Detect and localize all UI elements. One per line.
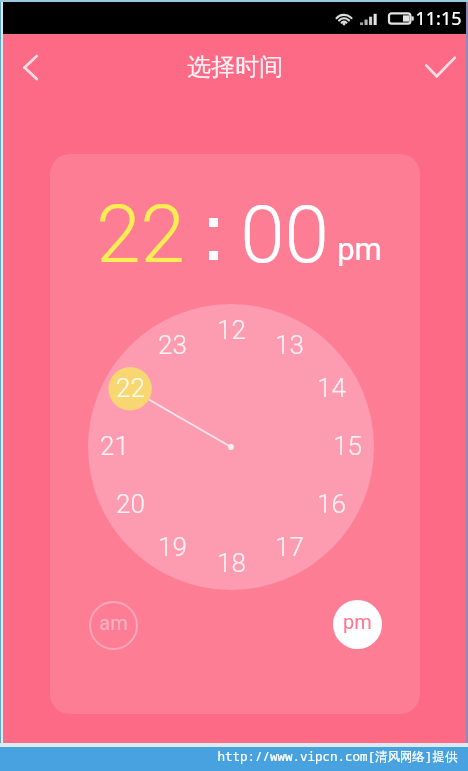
button[interactable]: Back bbox=[3, 40, 57, 94]
staticText: 11:15 bbox=[415, 6, 462, 31]
staticText: pm bbox=[337, 231, 382, 267]
staticText: 18 bbox=[217, 548, 246, 578]
staticText: 23 bbox=[158, 330, 187, 360]
staticText: 13 bbox=[275, 330, 304, 360]
button[interactable]: Confirm bbox=[408, 38, 466, 96]
button[interactable]: am bbox=[89, 601, 138, 650]
staticText: pm bbox=[343, 610, 372, 633]
staticText: http://www.vipcn.com[清风网络]提供 bbox=[217, 748, 458, 765]
staticText: 选择时间 bbox=[187, 52, 283, 82]
staticText: 22 bbox=[116, 373, 145, 403]
button[interactable]: pm bbox=[333, 600, 382, 649]
staticText: 14 bbox=[317, 373, 346, 403]
staticText: 00 bbox=[240, 188, 329, 282]
staticText: 22 bbox=[96, 188, 185, 282]
staticText: 20 bbox=[116, 489, 145, 519]
staticText: 16 bbox=[317, 489, 346, 519]
staticText: am bbox=[99, 611, 128, 634]
staticText: 17 bbox=[275, 532, 304, 562]
staticText: 21 bbox=[100, 431, 129, 461]
staticText: 15 bbox=[333, 431, 362, 461]
staticText: 12 bbox=[217, 315, 246, 345]
staticText: 19 bbox=[158, 532, 187, 562]
